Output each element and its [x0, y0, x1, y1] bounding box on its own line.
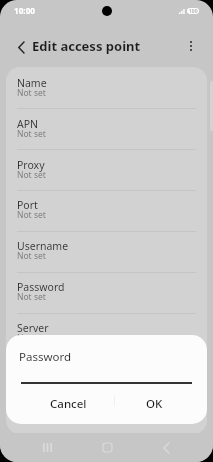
staticText: Not set	[17, 87, 46, 99]
staticText: Server	[17, 321, 49, 335]
button[interactable]: Cancel	[16, 390, 120, 417]
button[interactable]: MMSC	[6, 354, 207, 395]
staticText: Password	[17, 280, 65, 294]
button[interactable]: Navigate up	[7, 33, 35, 61]
button[interactable]: Name	[6, 68, 207, 109]
button[interactable]: Port	[6, 190, 207, 231]
staticText: Cancel	[50, 396, 87, 412]
staticText: APN	[17, 117, 39, 131]
staticText: Not set	[17, 128, 46, 140]
staticText: Not set	[17, 169, 46, 181]
button[interactable]: Home	[92, 433, 122, 462]
staticText: Not set	[17, 209, 46, 221]
staticText: Name	[17, 76, 47, 90]
button[interactable]: MMS proxy	[6, 395, 207, 434]
button[interactable]: OK	[116, 390, 192, 417]
staticText: Edit access point	[32, 37, 141, 55]
staticText: Not set	[17, 291, 46, 303]
staticText: Password	[19, 349, 72, 365]
button[interactable]: Server	[6, 313, 207, 354]
staticText: 10:00	[14, 5, 36, 16]
staticText: Username	[17, 239, 69, 253]
staticText: OK	[146, 396, 163, 412]
staticText: Not set	[17, 332, 46, 344]
button[interactable]: Password	[6, 272, 207, 313]
staticText: 100	[189, 8, 198, 14]
staticText: Not set	[17, 414, 46, 426]
staticText: Not set	[17, 373, 46, 385]
staticText: Port	[17, 198, 38, 212]
button[interactable]: Proxy	[6, 150, 207, 191]
staticText: MMS proxy	[17, 403, 73, 417]
staticText: Proxy	[17, 158, 45, 172]
button[interactable]: APN	[6, 109, 207, 150]
staticText: Not set	[17, 250, 46, 262]
button[interactable]: Recent apps	[32, 433, 62, 462]
button[interactable]: Username	[6, 231, 207, 272]
button[interactable]: More options	[178, 33, 204, 59]
